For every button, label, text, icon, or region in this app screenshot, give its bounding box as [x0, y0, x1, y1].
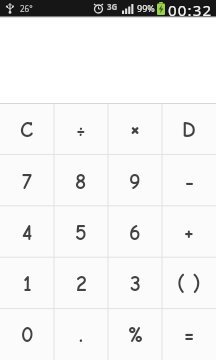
button[interactable]: = — [162, 309, 216, 360]
staticText: 5 — [75, 220, 87, 245]
staticText: 99% — [137, 2, 155, 14]
button[interactable]: × — [108, 103, 162, 155]
staticText: 3 — [130, 271, 141, 296]
staticText: = — [184, 322, 195, 347]
staticText: 4 — [22, 220, 33, 245]
button[interactable]: 2 — [54, 258, 108, 309]
staticText: 0 — [21, 322, 34, 347]
staticText: ( ) — [177, 271, 201, 296]
button[interactable]: 4 — [0, 207, 54, 258]
button[interactable]: 6 — [108, 207, 162, 258]
staticText: % — [128, 322, 143, 347]
button[interactable]: . — [54, 309, 108, 360]
staticText: 9 — [129, 169, 141, 194]
button[interactable]: D — [162, 103, 216, 155]
staticText: 7 — [22, 169, 32, 194]
button[interactable]: C — [0, 103, 54, 155]
staticText: 26° — [20, 3, 33, 14]
button[interactable]: % — [108, 309, 162, 360]
staticText: - — [185, 169, 194, 194]
button[interactable]: ( ) — [162, 258, 216, 309]
staticText: D — [182, 117, 196, 142]
staticText: 6 — [129, 220, 141, 245]
button[interactable]: 9 — [108, 155, 162, 207]
staticText: 8 — [75, 169, 87, 194]
button[interactable]: + — [162, 207, 216, 258]
staticText: × — [130, 114, 141, 144]
button[interactable]: ÷ — [54, 103, 108, 155]
button[interactable]: 0 — [0, 309, 54, 360]
staticText: . — [79, 322, 83, 347]
button[interactable]: - — [162, 155, 216, 207]
staticText: 1 — [23, 271, 32, 296]
button[interactable]: 5 — [54, 207, 108, 258]
staticText: 2 — [76, 271, 87, 296]
staticText: 00:32 — [168, 0, 213, 16]
staticText: 3G — [107, 1, 118, 12]
staticText: + — [184, 220, 194, 245]
staticText: ÷ — [76, 117, 86, 142]
staticText: C — [20, 117, 34, 142]
button[interactable]: 3 — [108, 258, 162, 309]
button[interactable]: 1 — [0, 258, 54, 309]
button[interactable]: 7 — [0, 155, 54, 207]
button[interactable]: 8 — [54, 155, 108, 207]
